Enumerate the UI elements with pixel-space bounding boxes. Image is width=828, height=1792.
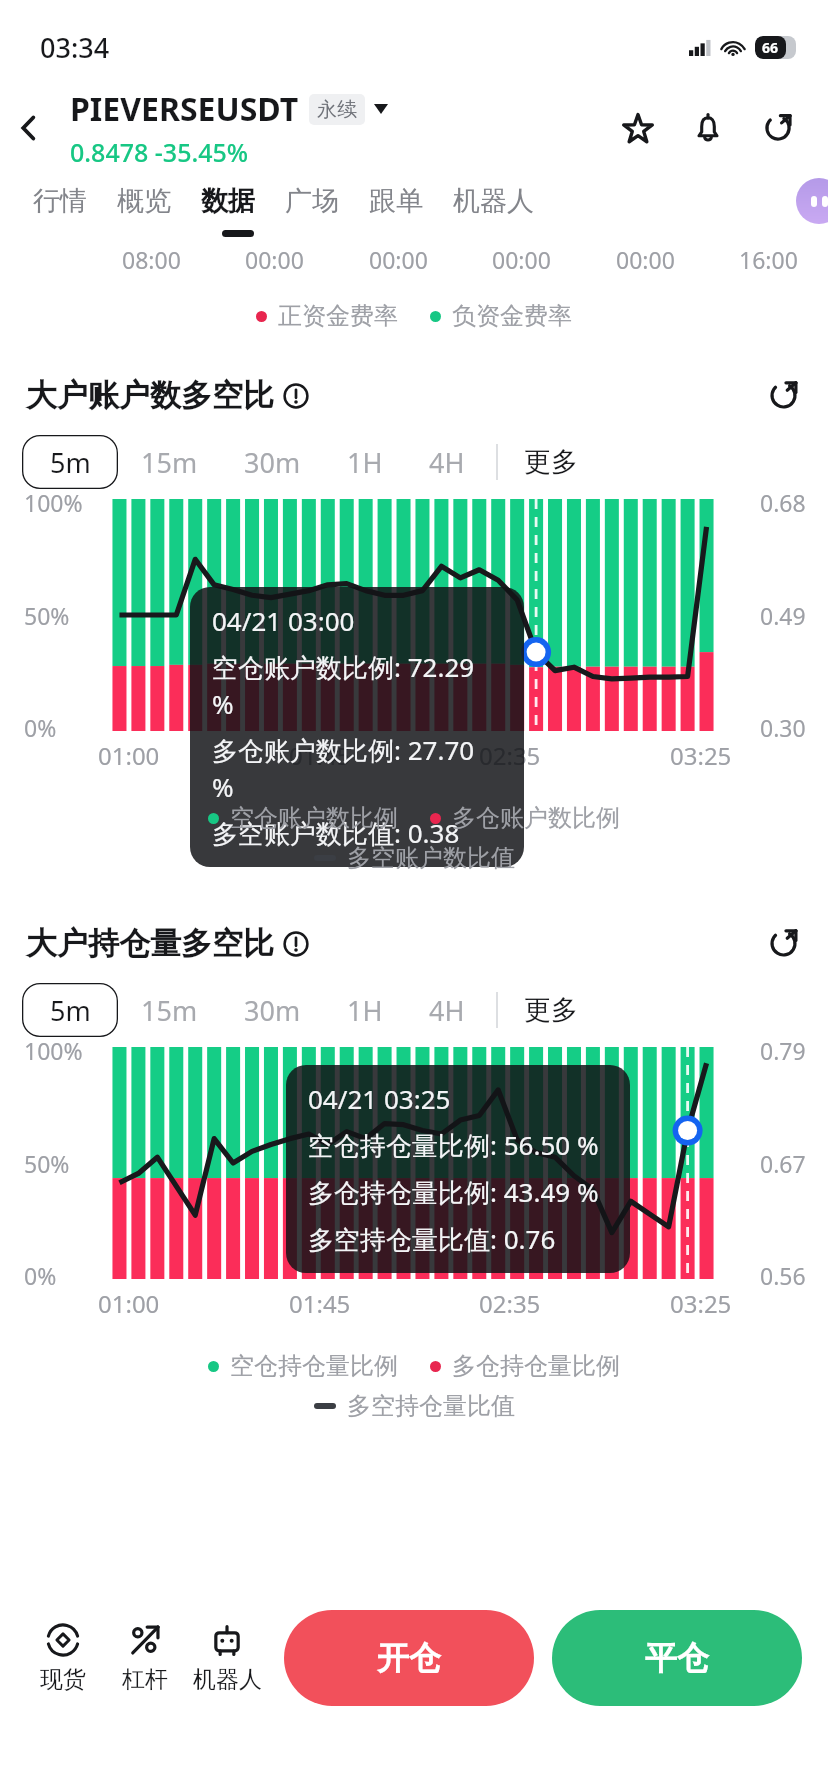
staticText: 01:00 (98, 739, 160, 772)
staticText: 多仓账户数比例: 27.70 % (212, 732, 502, 804)
staticText: 大户账户数多空比 (26, 376, 274, 415)
staticText: 00:00 (492, 244, 551, 275)
staticText: 15m (141, 992, 198, 1029)
staticText: 03:34 (40, 29, 110, 66)
staticText: 更多 (524, 445, 578, 479)
button[interactable]: 30m (221, 432, 324, 493)
staticText: 机器人 (193, 1665, 262, 1694)
staticText: 50% (24, 1148, 70, 1179)
button[interactable]: 更多 (498, 983, 578, 1037)
staticText: 多空账户数比值: 0.38 (212, 815, 460, 851)
staticText: 多仓持仓量比例 (452, 1351, 620, 1381)
staticText: 现货 (40, 1665, 86, 1694)
staticText: 16:00 (739, 244, 798, 275)
staticText: 15m (141, 444, 198, 481)
staticText: 01:45 (289, 1287, 351, 1320)
staticText: PIEVERSEUSDT (70, 87, 299, 131)
button[interactable]: 15m (118, 432, 221, 493)
staticText: 66 (762, 38, 779, 57)
staticText: 空仓账户数比例: 72.29 % (212, 649, 502, 721)
staticText: 0.56 (760, 1260, 806, 1291)
button[interactable]: 杠杆 (104, 1618, 186, 1698)
staticText: 1H (347, 444, 383, 481)
staticText: 多空持仓量比值 (347, 1391, 515, 1421)
staticText: 永续 (317, 97, 357, 122)
staticText: 广场 (285, 184, 339, 218)
button[interactable]: 机器人 (438, 174, 549, 228)
staticText: 100% (24, 487, 83, 518)
button[interactable]: 1H (324, 980, 406, 1041)
staticText: 开仓 (377, 1638, 441, 1678)
staticText: 100% (24, 1035, 83, 1066)
staticText: 更多 (524, 993, 578, 1027)
staticText: 03:25 (670, 739, 732, 772)
staticText: 00:00 (369, 244, 428, 275)
staticText: 0.49 (760, 600, 806, 631)
staticText: 30m (244, 444, 301, 481)
staticText: 00:00 (245, 244, 304, 275)
staticText: 04/21 03:00 (212, 603, 355, 638)
button[interactable]: 更多 (498, 435, 578, 489)
staticText: 00:00 (616, 244, 675, 275)
staticText: 02:35 (479, 1287, 541, 1320)
button[interactable]: Open full chart (758, 918, 808, 968)
button[interactable]: Price alert (684, 104, 732, 152)
button[interactable]: Back (0, 99, 58, 157)
button[interactable]: 5m (22, 983, 118, 1037)
staticText: 杠杆 (122, 1665, 168, 1694)
button[interactable]: 4H (406, 432, 488, 493)
staticText: 大户持仓量多空比 (26, 924, 274, 963)
button[interactable]: 15m (118, 980, 221, 1041)
staticText: 5m (50, 444, 91, 481)
staticText: 正资金费率 (278, 301, 398, 331)
staticText: 01:00 (98, 1287, 160, 1320)
button[interactable]: 开仓 (284, 1610, 534, 1706)
staticText: 0.8478 -35.45% (70, 135, 249, 169)
button[interactable]: 平仓 (552, 1610, 802, 1706)
staticText: 08:00 (122, 244, 181, 275)
staticText: 空仓账户数比例 (230, 803, 398, 833)
button[interactable]: 现货 (22, 1618, 104, 1698)
staticText: 空仓持仓量比例 (230, 1351, 398, 1381)
staticText: 行情 (33, 184, 87, 218)
staticText: 4H (429, 992, 465, 1029)
staticText: 5m (50, 992, 91, 1029)
button[interactable]: 广场 (270, 174, 354, 228)
staticText: 机器人 (453, 184, 534, 218)
staticText: 30m (244, 992, 301, 1029)
staticText: 50% (24, 600, 70, 631)
button[interactable]: 30m (221, 980, 324, 1041)
staticText: 01:45 (289, 739, 351, 772)
button[interactable]: Favorite (614, 104, 662, 152)
staticText: 4H (429, 444, 465, 481)
staticText: 跟单 (369, 184, 423, 218)
button[interactable]: 行情 (18, 174, 102, 228)
staticText: 多仓持仓量比例: 43.49 % (308, 1174, 599, 1210)
staticText: 0% (24, 712, 57, 743)
staticText: 负资金费率 (452, 301, 572, 331)
staticText: 概览 (117, 184, 171, 218)
button[interactable]: Share (754, 104, 802, 152)
button[interactable]: 4H (406, 980, 488, 1041)
button[interactable]: 机器人 (186, 1618, 268, 1698)
staticText: 0.67 (760, 1148, 806, 1179)
button[interactable]: 概览 (102, 174, 186, 228)
staticText: 04/21 03:25 (308, 1081, 451, 1116)
button[interactable]: 跟单 (354, 174, 438, 228)
staticText: 多仓账户数比例 (452, 803, 620, 833)
button[interactable]: 5m (22, 435, 118, 489)
staticText: 0.30 (760, 712, 806, 743)
staticText: 0.79 (760, 1035, 806, 1066)
button[interactable]: 1H (324, 432, 406, 493)
button[interactable]: Assistant (796, 178, 828, 224)
staticText: 0.68 (760, 487, 806, 518)
staticText: 多空持仓量比值: 0.76 (308, 1221, 556, 1257)
button[interactable]: 数据 (186, 174, 270, 228)
staticText: 0% (24, 1260, 57, 1291)
staticText: 空仓持仓量比例: 56.50 % (308, 1127, 599, 1163)
staticText: 多空账户数比值 (347, 843, 515, 873)
button[interactable]: Open full chart (758, 370, 808, 420)
staticText: 03:25 (670, 1287, 732, 1320)
staticText: 1H (347, 992, 383, 1029)
staticText: 数据 (201, 184, 255, 218)
